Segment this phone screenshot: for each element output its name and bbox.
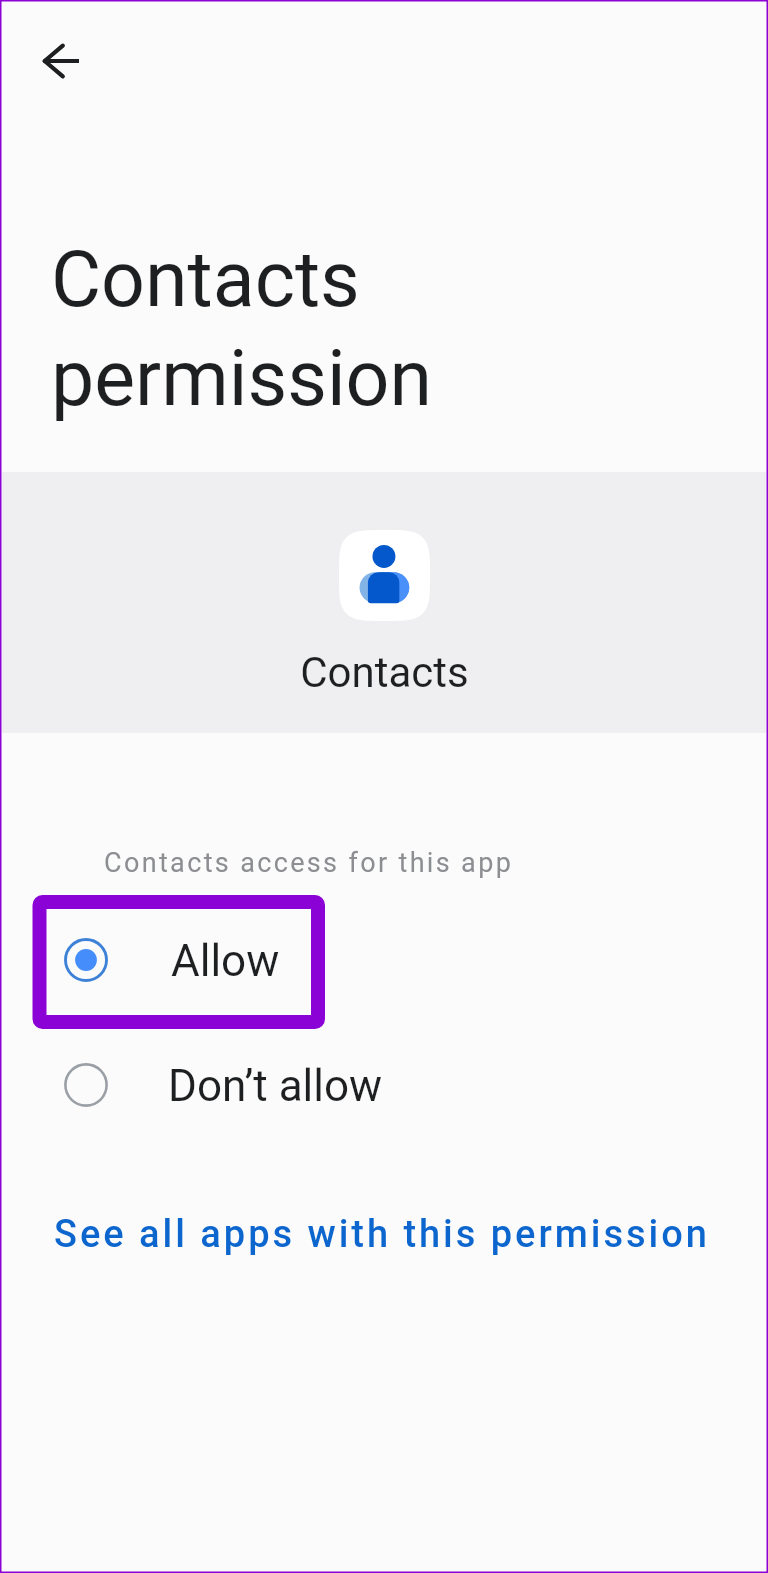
staticText: Contacts permission bbox=[51, 235, 433, 423]
staticText: Contacts bbox=[300, 648, 469, 697]
staticText: Contacts access for this app bbox=[104, 847, 514, 879]
staticText: Don’t allow bbox=[168, 1060, 383, 1112]
staticText: See all apps with this permission bbox=[54, 1212, 710, 1257]
button[interactable]: Back bbox=[27, 27, 95, 95]
button[interactable]: See all apps with this permission bbox=[36, 1190, 722, 1274]
staticText: Allow bbox=[171, 935, 280, 987]
button[interactable]: Don’t allow bbox=[0, 1023, 768, 1147]
button[interactable]: Allow bbox=[0, 898, 768, 1022]
